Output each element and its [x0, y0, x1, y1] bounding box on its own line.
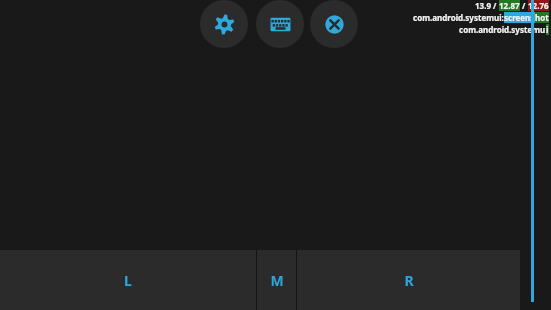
button[interactable]: R: [297, 250, 520, 310]
staticText: 13.9 /: [475, 0, 499, 11]
staticText: i: [546, 24, 549, 35]
button[interactable]: L: [0, 250, 256, 310]
staticText: 12.76: [528, 0, 549, 11]
staticText: com.android.systemui:: [413, 12, 504, 23]
button[interactable]: Keyboard: [256, 0, 304, 48]
button[interactable]: Settings: [200, 0, 248, 48]
staticText: R: [404, 271, 414, 290]
staticText: hot: [535, 12, 549, 23]
staticText: screens: [504, 12, 535, 23]
staticText: M: [270, 271, 284, 290]
button[interactable]: Close: [310, 0, 358, 48]
staticText: L: [124, 271, 132, 290]
staticText: 12.87: [499, 0, 520, 11]
button[interactable]: M: [257, 250, 296, 310]
staticText: com.android.systemu: [459, 24, 546, 35]
staticText: /: [520, 0, 528, 11]
